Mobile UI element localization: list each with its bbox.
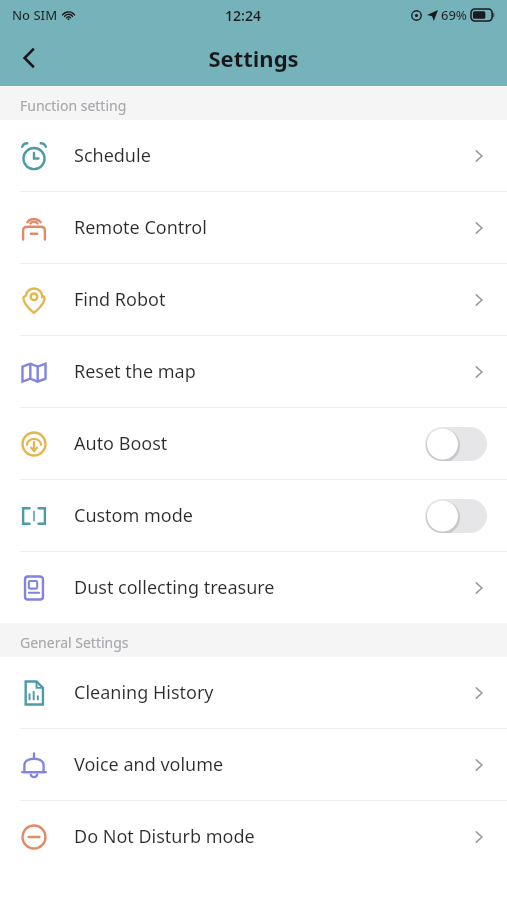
staticText: Do Not Disturb mode [74,824,255,849]
staticText: No SIM [12,6,58,24]
staticText: Function setting [20,96,127,115]
button[interactable]: Remote Control [0,192,507,264]
button[interactable]: Auto Boost [0,408,507,480]
staticText: Custom mode [74,503,193,528]
button[interactable]: Cleaning History [0,657,507,729]
button[interactable]: Find Robot [0,264,507,336]
staticText: General Settings [20,633,129,652]
button[interactable]: Dust collecting treasure [0,552,507,623]
button[interactable]: Custom mode [0,480,507,552]
staticText: Voice and volume [74,752,224,777]
staticText: 12:24 [225,6,261,25]
staticText: 69% [441,6,467,24]
button[interactable]: Schedule [0,120,507,192]
button[interactable]: Voice and volume [0,729,507,801]
staticText: Auto Boost [74,431,168,456]
button[interactable]: Reset the map [0,336,507,408]
staticText: Schedule [74,143,151,168]
staticText: Remote Control [74,215,207,240]
staticText: Dust collecting treasure [74,575,275,600]
button[interactable]: Do Not Disturb mode [0,801,507,872]
button[interactable]: Toggle [425,499,487,533]
staticText: Cleaning History [74,680,214,705]
staticText: Settings [208,43,299,73]
staticText: Find Robot [74,287,166,312]
staticText: Reset the map [74,359,196,384]
button[interactable]: Back [0,30,58,86]
button[interactable]: Toggle [425,427,487,461]
